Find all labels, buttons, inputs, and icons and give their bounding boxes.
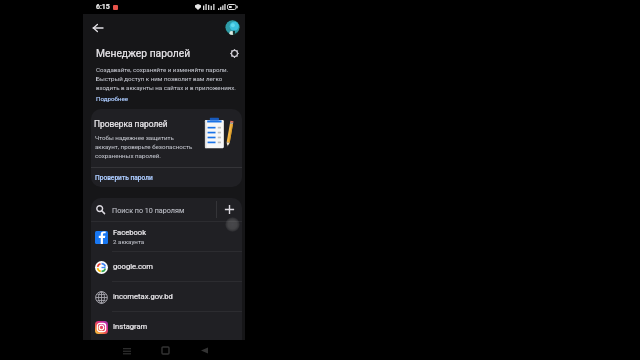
button[interactable]: Instagram <box>91 312 242 341</box>
button[interactable]: Home <box>158 343 173 358</box>
button[interactable]: google.com <box>91 252 242 281</box>
staticText: Instagram <box>113 322 148 331</box>
staticText: incometax.gov.bd <box>113 292 173 301</box>
staticText: Менеджер паролей <box>96 47 191 59</box>
button[interactable]: Account <box>225 20 240 35</box>
staticText: Проверка паролей <box>94 119 168 129</box>
staticText: google.com <box>113 262 154 271</box>
staticText: 2 аккаунта <box>113 238 145 245</box>
staticText: Чтобы надежнее защитить аккаунт, проверь… <box>95 134 199 160</box>
staticText: Поиск по 10 паролям <box>112 206 185 214</box>
button[interactable]: Recents <box>119 343 134 358</box>
button[interactable]: Settings <box>226 45 242 61</box>
staticText: 6:15 <box>96 3 110 11</box>
button[interactable]: Back <box>197 343 212 358</box>
button[interactable]: incometax.gov.bd <box>91 282 242 311</box>
button[interactable]: Facebook <box>91 222 242 251</box>
staticText: Подробнее <box>96 95 128 102</box>
button[interactable]: Проверить пароли <box>91 168 242 187</box>
button[interactable]: Поиск по 10 паролям <box>91 198 216 221</box>
button[interactable]: Back <box>88 18 108 38</box>
button[interactable]: Подробнее <box>96 95 128 102</box>
staticText: Facebook <box>113 228 146 237</box>
button[interactable]: Add password <box>217 198 242 221</box>
staticText: Создавайте, сохраняйте и изменяйте парол… <box>96 66 243 92</box>
staticText: Проверить пароли <box>95 174 153 182</box>
